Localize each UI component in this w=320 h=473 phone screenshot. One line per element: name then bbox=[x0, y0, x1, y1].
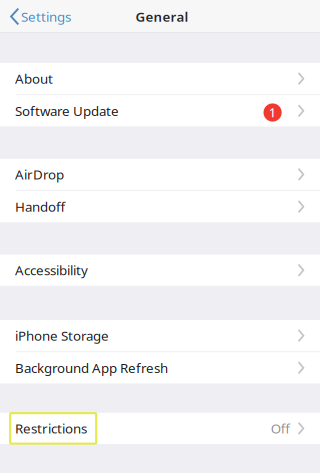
button[interactable]: iPhone Storage bbox=[0, 320, 320, 351]
staticText: About bbox=[15, 70, 53, 87]
staticText: iPhone Storage bbox=[15, 327, 109, 344]
staticText: Software Update bbox=[15, 102, 119, 120]
button[interactable]: About bbox=[0, 63, 320, 94]
button[interactable]: Back to Settings bbox=[0, 3, 79, 30]
staticText: Settings bbox=[21, 8, 71, 25]
button[interactable]: Handoff bbox=[0, 191, 320, 222]
staticText: Background App Refresh bbox=[15, 359, 168, 377]
button[interactable]: Background App Refresh bbox=[0, 352, 320, 383]
staticText: Accessibility bbox=[15, 261, 88, 279]
button[interactable]: Software Update bbox=[0, 95, 320, 126]
button[interactable]: Accessibility bbox=[0, 255, 320, 286]
button[interactable]: Restrictions bbox=[0, 413, 320, 444]
staticText: AirDrop bbox=[15, 165, 64, 183]
staticText: Off bbox=[271, 419, 290, 437]
staticText: Handoff bbox=[15, 198, 65, 215]
staticText: General bbox=[135, 8, 188, 25]
button[interactable]: AirDrop bbox=[0, 159, 320, 190]
staticText: 1 bbox=[269, 104, 276, 120]
staticText: Restrictions bbox=[15, 419, 87, 437]
